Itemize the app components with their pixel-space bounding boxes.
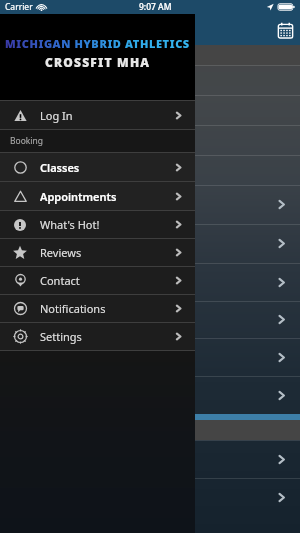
button[interactable]: [0, 155, 300, 185]
staticText: Settings: [40, 329, 82, 344]
button[interactable]: Contact: [0, 267, 195, 294]
button[interactable]: [0, 338, 300, 376]
button[interactable]: [0, 125, 300, 155]
button[interactable]: [0, 376, 300, 414]
button[interactable]: [0, 263, 300, 301]
staticText: Log In: [40, 108, 73, 123]
button[interactable]: [0, 440, 300, 478]
button[interactable]: Notifications: [0, 295, 195, 322]
button[interactable]: [0, 478, 300, 516]
button[interactable]: [0, 95, 300, 125]
button[interactable]: Settings: [0, 323, 195, 350]
button[interactable]: Calendar: [270, 15, 300, 45]
staticText: WED, MAR 25: [8, 49, 62, 61]
staticText: Appointments: [40, 189, 117, 204]
staticText: 9:07 AM: [139, 1, 172, 13]
button[interactable]: [0, 185, 300, 224]
button[interactable]: [0, 301, 300, 338]
button[interactable]: [0, 65, 300, 95]
staticText: Carrier: [5, 1, 33, 13]
staticText: Notifications: [40, 301, 106, 316]
staticText: Booking: [10, 135, 44, 147]
staticText: CROSSFIT MHA: [45, 54, 151, 70]
staticText: What's Hot!: [40, 217, 100, 232]
staticText: Classes: [40, 160, 80, 175]
staticText: Reviews: [40, 245, 82, 260]
button[interactable]: Log In: [0, 101, 195, 129]
button[interactable]: Appointments: [0, 182, 195, 210]
button[interactable]: [0, 224, 300, 263]
button[interactable]: What's Hot!: [0, 211, 195, 238]
button[interactable]: Reviews: [0, 239, 195, 266]
staticText: MICHIGAN HYBRID ATHLETICS: [5, 36, 190, 51]
button[interactable]: Classes: [0, 153, 195, 181]
staticText: Contact: [40, 273, 80, 288]
